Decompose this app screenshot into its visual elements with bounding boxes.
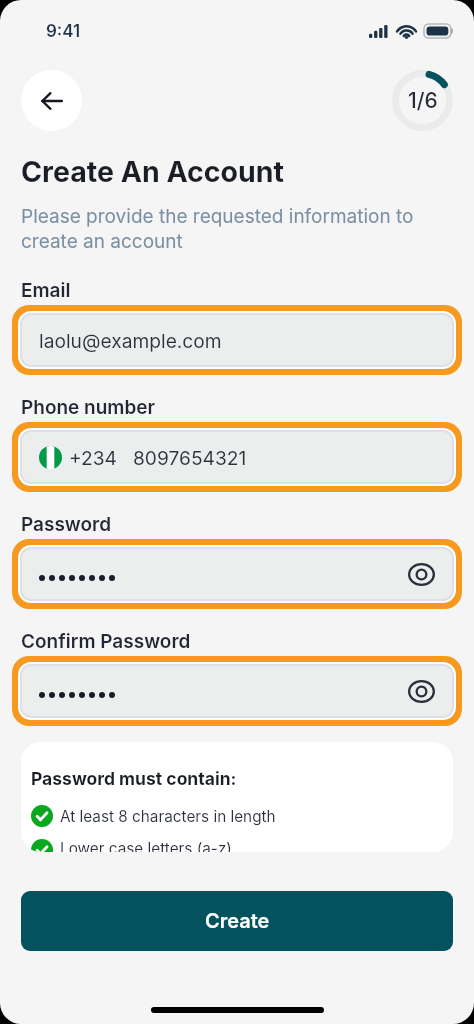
staticText: At least 8 characters in length [60,807,276,826]
staticText: Please provide the requested information… [21,205,414,253]
staticText: Lower case letters (a-z) [60,839,232,852]
button[interactable]: Create [21,891,453,951]
button[interactable]: Show password [20,664,454,718]
staticText: Create [205,909,270,933]
staticText: laolu@example.com [39,329,222,352]
button[interactable]: Back [21,70,82,131]
other: Show password [408,563,435,586]
button[interactable]: Show password [20,547,454,601]
staticText: Confirm Password [21,630,191,653]
staticText: +234 [69,446,117,469]
staticText: 9:41 [46,21,81,42]
button[interactable]: +234 [20,430,454,484]
staticText: Phone number [21,396,156,419]
staticText: 8097654321 [133,446,247,469]
staticText: Password [21,513,112,536]
button[interactable]: laolu@example.com [20,313,454,367]
staticText: 1/6 [408,88,438,113]
staticText: Password must contain: [31,768,237,789]
other: Show password [408,680,435,703]
staticText: Email [21,279,71,302]
staticText: Create An Account [21,154,285,188]
